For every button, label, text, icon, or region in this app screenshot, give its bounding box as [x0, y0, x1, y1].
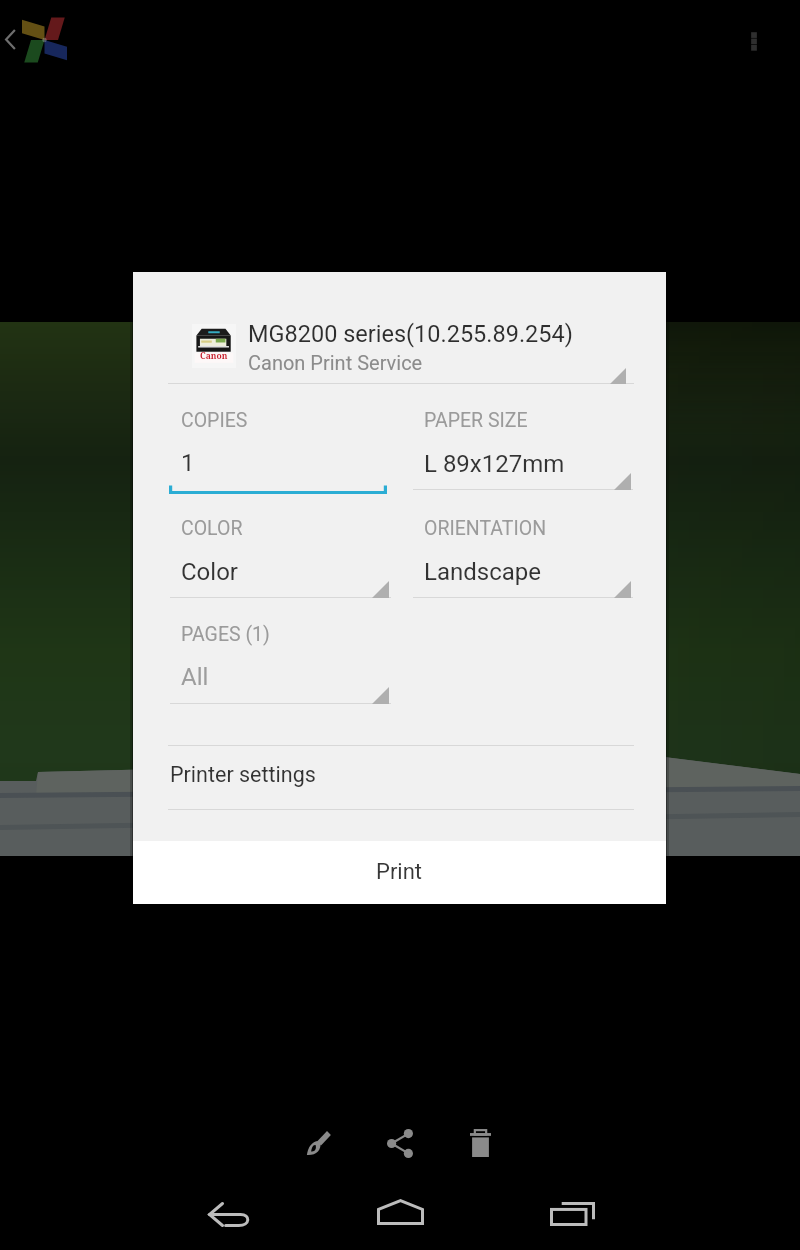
button[interactable]: Back: [194, 1178, 266, 1250]
button[interactable]: [170, 509, 391, 605]
staticText: COPIES: [181, 409, 248, 432]
staticText: All: [181, 663, 209, 691]
button[interactable]: [169, 401, 387, 497]
button[interactable]: Canon: [168, 312, 634, 384]
staticText: MG8200 series(10.255.89.254): [248, 320, 573, 348]
button[interactable]: [413, 401, 633, 497]
staticText: 1: [181, 449, 195, 477]
staticText: L 89x127mm: [424, 450, 565, 478]
staticText: Printer settings: [170, 762, 316, 787]
button[interactable]: Print: [133, 841, 666, 904]
button[interactable]: Recent apps: [536, 1178, 608, 1250]
button[interactable]: Delete: [450, 1113, 510, 1173]
button[interactable]: Printer settings: [133, 746, 666, 809]
staticText: COLOR: [181, 517, 243, 540]
button[interactable]: More options: [734, 21, 774, 61]
button[interactable]: Back to Photos: [0, 16, 77, 62]
staticText: Canon: [200, 350, 228, 362]
button[interactable]: [413, 509, 633, 605]
button[interactable]: Home: [364, 1176, 436, 1248]
staticText: Print: [376, 859, 423, 885]
staticText: PAPER SIZE: [424, 409, 528, 432]
staticText: ORIENTATION: [424, 517, 547, 540]
staticText: Landscape: [424, 558, 541, 586]
staticText: PAGES (1): [181, 623, 270, 646]
staticText: Color: [181, 558, 238, 586]
button[interactable]: Edit: [288, 1113, 348, 1173]
button[interactable]: [170, 615, 391, 711]
staticText: Canon Print Service: [248, 351, 423, 374]
button[interactable]: Share: [370, 1113, 430, 1173]
